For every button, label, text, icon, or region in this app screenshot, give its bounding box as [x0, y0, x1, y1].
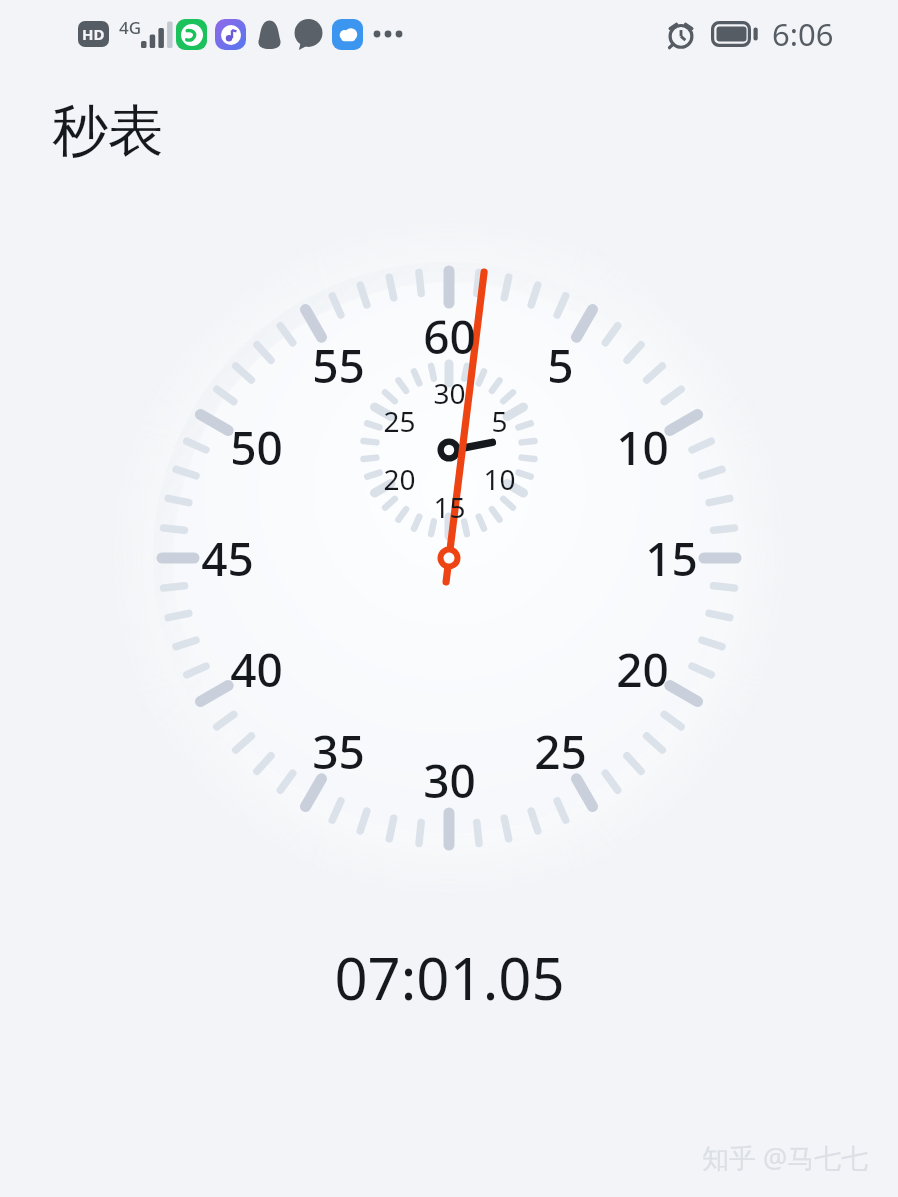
staticText: 20	[616, 638, 669, 700]
staticText: 秒表	[52, 96, 164, 167]
staticText: 45	[201, 527, 254, 589]
staticText: 知乎 @马七七	[702, 1139, 869, 1176]
staticText: 25	[383, 402, 416, 440]
staticText: 30	[433, 374, 466, 412]
staticText: 6:06	[772, 13, 834, 55]
staticText: 10	[483, 460, 516, 498]
button[interactable]: 秒表	[52, 96, 164, 167]
button[interactable]: 07:01.05	[0, 938, 898, 1010]
staticText: 4G	[119, 16, 142, 39]
staticText: 55	[312, 334, 365, 396]
staticText: 5	[491, 402, 508, 440]
staticText: 35	[312, 720, 365, 782]
staticText: 20	[383, 460, 416, 498]
button[interactable]: Stopwatch dial, start or stop	[0, 0, 898, 1197]
staticText: 07:01.05	[334, 938, 565, 1010]
staticText: 30	[423, 749, 476, 811]
staticText: 10	[616, 416, 669, 478]
staticText: 15	[433, 488, 466, 526]
staticText: 5	[547, 334, 574, 396]
staticText: 60	[423, 305, 476, 367]
staticText: 40	[230, 638, 283, 700]
staticText: 15	[645, 527, 698, 589]
staticText: 25	[534, 720, 587, 782]
staticText: HD	[82, 24, 105, 44]
staticText: 50	[230, 416, 283, 478]
